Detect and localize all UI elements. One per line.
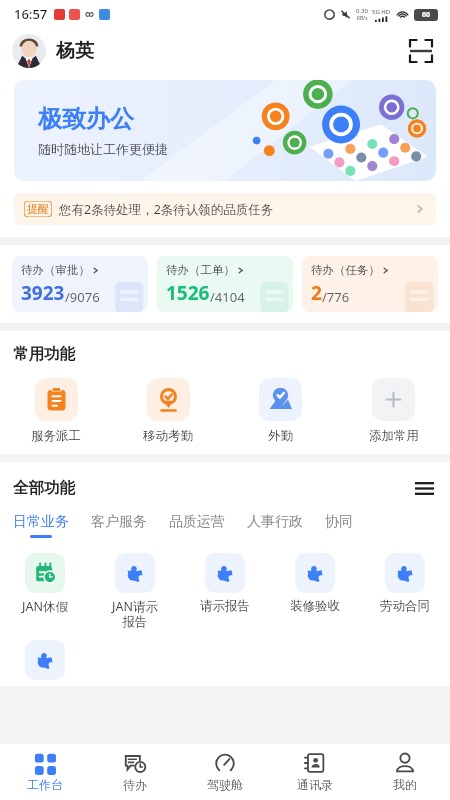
staticText: /9076: [65, 288, 100, 306]
button[interactable]: 日常业务: [13, 513, 69, 538]
button[interactable]: 服务派工: [0, 378, 112, 444]
button[interactable]: 杨英: [12, 34, 94, 68]
staticText: 常用功能: [13, 344, 75, 364]
button[interactable]: 装修验收: [270, 553, 360, 614]
staticText: JAN请示 报告: [112, 598, 158, 630]
staticText: 0.30: [356, 7, 368, 15]
button[interactable]: 添加常用: [337, 378, 450, 444]
staticText: 2: [311, 280, 322, 306]
staticText: 待办: [123, 777, 147, 792]
button[interactable]: 扫一扫: [406, 36, 436, 66]
staticText: 3923: [21, 280, 65, 306]
staticText: 客户服务: [91, 513, 147, 531]
button[interactable]: JAN请示 报告: [90, 553, 180, 630]
staticText: 外勤: [268, 428, 293, 444]
staticText: 日常业务: [13, 513, 69, 531]
button[interactable]: 移动考勤: [112, 378, 224, 444]
button[interactable]: 极致办公: [14, 80, 436, 181]
staticText: 人事行政: [247, 513, 303, 531]
staticText: 服务派工: [31, 428, 81, 444]
button[interactable]: 品质运营: [169, 513, 225, 538]
button[interactable]: 协同: [325, 513, 353, 538]
staticText: 待办（任务）: [311, 263, 380, 277]
button[interactable]: 更多: [411, 475, 437, 501]
staticText: 全部功能: [13, 478, 75, 498]
staticText: 请示报告: [200, 598, 250, 614]
staticText: 60: [422, 10, 431, 20]
button[interactable]: 人事行政: [247, 513, 303, 538]
button[interactable]: 工作台: [0, 744, 90, 800]
staticText: 提醒: [27, 202, 49, 216]
staticText: 通讯录: [297, 777, 333, 792]
button[interactable]: 待办: [90, 744, 180, 800]
staticText: JAN休假: [22, 598, 68, 615]
button[interactable]: 劳动合同: [360, 553, 450, 614]
staticText: 驾驶舱: [207, 777, 243, 792]
staticText: 协同: [325, 513, 353, 531]
staticText: 我的: [393, 777, 417, 792]
button[interactable]: JAN休假: [0, 553, 90, 615]
button[interactable]: 通讯录: [270, 744, 360, 800]
button[interactable]: 我的: [360, 744, 450, 800]
staticText: 您有2条待处理，2条待认领的品质任务: [59, 201, 274, 218]
staticText: 待办（工单）: [166, 263, 235, 277]
staticText: 极致办公: [38, 104, 134, 134]
button[interactable]: 提醒: [14, 193, 436, 225]
staticText: /776: [322, 288, 350, 306]
staticText: 待办（审批）: [21, 263, 90, 277]
staticText: 16:57: [14, 5, 48, 23]
staticText: 添加常用: [369, 428, 419, 444]
button[interactable]: 驾驶舱: [180, 744, 270, 800]
staticText: KB/s: [357, 15, 368, 22]
staticText: /4104: [210, 288, 245, 306]
button[interactable]: 请示报告: [180, 553, 270, 614]
button[interactable]: 待办（工单）: [157, 256, 293, 312]
staticText: 杨英: [56, 39, 94, 63]
button[interactable]: 待办（审批）: [12, 256, 148, 312]
staticText: 移动考勤: [143, 428, 193, 444]
button[interactable]: 待办（任务）: [302, 256, 438, 312]
button[interactable]: 外勤: [224, 378, 337, 444]
button[interactable]: 客户服务: [91, 513, 147, 538]
staticText: 1526: [166, 280, 210, 306]
staticText: 劳动合同: [380, 598, 430, 614]
button[interactable]: 功能: [25, 640, 65, 680]
staticText: 工作台: [27, 777, 63, 792]
staticText: 品质运营: [169, 513, 225, 531]
staticText: 5G HD: [372, 8, 391, 16]
staticText: 装修验收: [290, 598, 340, 614]
staticText: 随时随地让工作更便捷: [38, 141, 168, 157]
